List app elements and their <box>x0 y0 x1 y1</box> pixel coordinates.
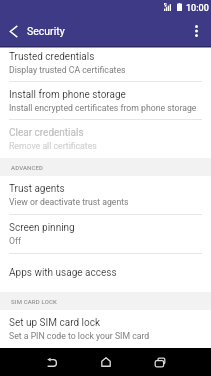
staticText: Clear credentials <box>9 127 84 139</box>
button[interactable]: Clear credentials <box>0 120 211 158</box>
staticText: Trusted credentials <box>9 51 95 63</box>
button[interactable]: Apps with usage access <box>0 254 211 292</box>
staticText: ADVANCED <box>11 164 44 171</box>
button[interactable]: Trust agents <box>0 176 211 214</box>
button[interactable]: Navigate up <box>5 23 21 39</box>
staticText: View or deactivate trust agents <box>9 197 129 207</box>
button[interactable]: Trusted credentials <box>0 45 211 81</box>
staticText: Set a PIN code to lock your SIM card <box>9 331 150 341</box>
staticText: SIM CARD LOCK <box>11 298 57 305</box>
button[interactable]: Recent apps <box>147 348 173 376</box>
button[interactable]: Back <box>39 348 65 376</box>
staticText: Security <box>27 25 65 37</box>
button[interactable]: Home <box>93 348 119 376</box>
staticText: Apps with usage access <box>9 267 117 279</box>
button[interactable]: Screen pinning <box>0 215 211 253</box>
staticText: Off <box>9 236 22 246</box>
staticText: Install encrypted certificates from phon… <box>9 103 197 113</box>
button[interactable]: Set up SIM card lock <box>0 310 211 348</box>
staticText: Remove all certificates <box>9 141 97 151</box>
staticText: Screen pinning <box>9 222 75 234</box>
staticText: Install from phone storage <box>9 89 126 101</box>
button[interactable]: Install from phone storage <box>0 82 211 119</box>
staticText: Set up SIM card lock <box>9 317 100 329</box>
staticText: 10:00 <box>186 3 209 14</box>
button[interactable]: More options <box>188 23 204 39</box>
staticText: Trust agents <box>9 183 65 195</box>
staticText: Display trusted CA certificates <box>9 65 126 75</box>
